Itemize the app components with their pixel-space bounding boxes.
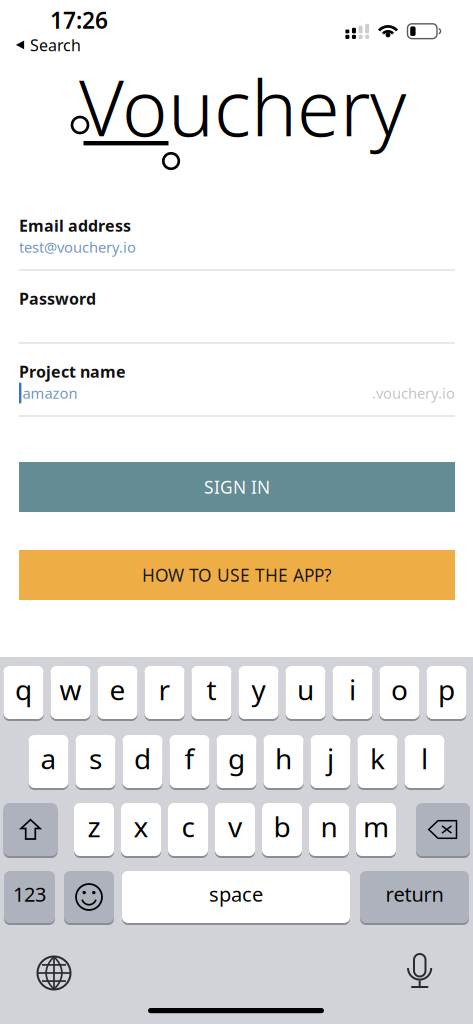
button[interactable]: a [28,735,68,790]
button[interactable]: space [122,871,350,925]
button[interactable]: d [122,735,162,790]
button[interactable]: c [168,803,208,858]
button[interactable]: y [238,666,278,721]
staticText: space [209,881,263,907]
button[interactable]: z [74,803,114,858]
staticText: g [228,740,245,777]
staticText: s [89,740,102,777]
button[interactable]: m [356,803,396,858]
button[interactable]: x [121,803,161,858]
staticText: q [15,671,32,708]
staticText: Email address [19,215,131,236]
button[interactable]: n [309,803,349,858]
button[interactable]: i [332,666,372,721]
staticText: HOW TO USE THE APP? [142,563,332,586]
button[interactable]: h [263,735,303,790]
staticText: r [158,671,170,708]
staticText: 123 [13,881,46,907]
staticText: f [184,740,194,777]
button[interactable]: HOW TO USE THE APP? [19,550,455,600]
button[interactable]: Shift [3,803,57,858]
button[interactable]: g [216,735,256,790]
button[interactable]: v [215,803,255,858]
staticText: return [385,881,443,907]
button[interactable]: k [357,735,397,790]
button[interactable]: Delete [416,803,470,858]
staticText: h [275,740,292,777]
button[interactable]: p [426,666,466,721]
staticText: a [40,740,56,777]
button[interactable]: SIGN IN [19,462,455,512]
staticText: .vouchery.io [372,383,455,403]
staticText: v [228,808,242,845]
button[interactable]: o [379,666,419,721]
button[interactable]: Next keyboard [34,953,74,993]
button[interactable]: return [360,871,469,925]
button[interactable]: j [310,735,350,790]
staticText: k [370,740,385,777]
staticText: 17:26 [50,5,108,35]
button[interactable]: Emoji [64,871,114,925]
button[interactable]: r [144,666,184,721]
staticText: amazon [22,383,77,403]
button[interactable]: f [169,735,209,790]
button[interactable]: w [50,666,90,721]
staticText: o [391,671,408,708]
staticText: l [421,740,428,777]
staticText: test@vouchery.io [19,237,136,257]
button[interactable]: e [97,666,137,721]
staticText: b [273,808,290,845]
button[interactable]: Back to Search [15,35,115,55]
button[interactable]: q [3,666,43,721]
button[interactable]: t [191,666,231,721]
button[interactable]: s [75,735,115,790]
staticText: m [363,808,389,845]
staticText: t [206,671,216,708]
button[interactable]: b [262,803,302,858]
button[interactable]: Dictate [402,952,436,992]
staticText: Project name [19,361,126,382]
staticText: y [251,671,265,708]
staticText: w [59,671,81,708]
staticText: Password [19,288,96,309]
staticText: u [297,671,314,708]
staticText: n [320,808,337,845]
button[interactable]: l [404,735,444,790]
staticText: i [349,671,356,708]
staticText: j [327,740,334,777]
button[interactable]: u [285,666,325,721]
staticText: Vouchery [79,55,406,158]
staticText: p [438,671,455,708]
staticText: z [87,808,100,845]
staticText: d [134,740,151,777]
staticText: e [109,671,125,708]
staticText: SIGN IN [204,475,270,498]
staticText: c [181,808,194,845]
staticText: Search [30,34,81,56]
staticText: x [133,808,148,845]
button[interactable]: 123 [4,871,55,925]
